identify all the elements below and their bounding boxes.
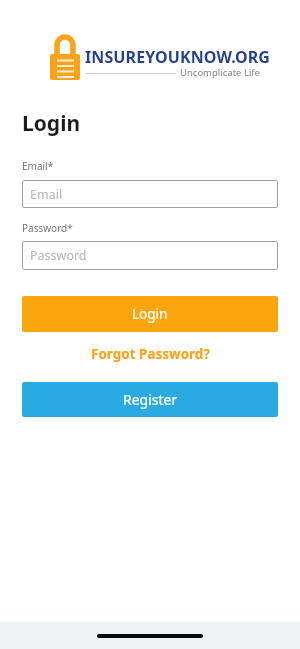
button[interactable]: Email — [22, 180, 278, 208]
staticText: Email* — [22, 159, 54, 173]
button[interactable]: Forgot Password? — [91, 345, 210, 363]
staticText: Login — [132, 305, 168, 323]
staticText: INSUREYOUKNOW.ORG — [85, 46, 270, 68]
staticText: Email — [30, 186, 63, 203]
staticText: Register — [123, 390, 178, 409]
staticText: Password* — [22, 221, 73, 235]
staticText: Login — [22, 109, 81, 138]
staticText: Uncomplicate Life — [180, 66, 260, 79]
button[interactable]: Register — [22, 382, 278, 417]
button[interactable]: Login — [22, 296, 278, 332]
staticText: Password — [30, 247, 87, 264]
button[interactable]: Password — [22, 241, 278, 270]
